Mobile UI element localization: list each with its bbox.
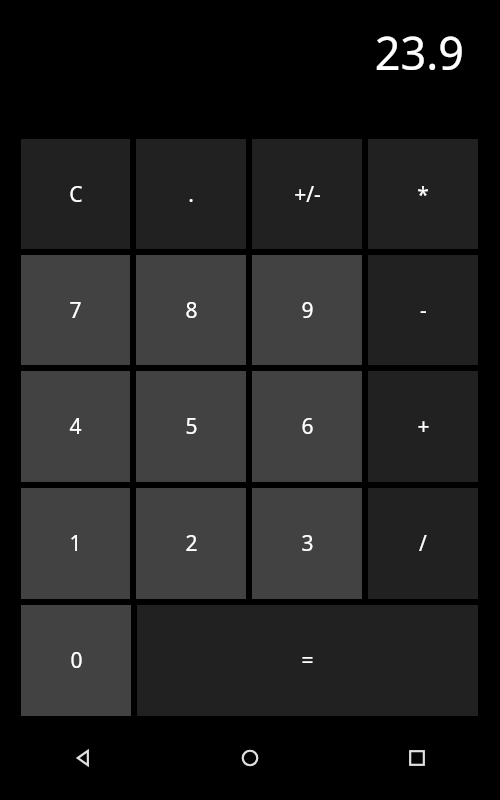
button[interactable]: 3 [252, 488, 362, 599]
staticText: = [301, 646, 314, 675]
staticText: 4 [69, 412, 82, 441]
staticText: 0 [70, 646, 83, 675]
button[interactable]: 1 [21, 488, 130, 599]
staticText: C [69, 180, 83, 209]
button[interactable]: - [368, 255, 478, 365]
staticText: +/- [294, 180, 321, 209]
button[interactable]: 9 [252, 255, 362, 365]
button[interactable]: = [137, 605, 478, 716]
staticText: 3 [301, 529, 314, 558]
button[interactable]: Home [166, 716, 333, 800]
button[interactable]: 8 [136, 255, 246, 365]
staticText: 8 [185, 296, 198, 325]
button[interactable]: 5 [136, 371, 246, 482]
button[interactable]: Recent apps [333, 716, 500, 800]
button[interactable]: +/- [252, 139, 362, 249]
staticText: / [419, 529, 427, 558]
button[interactable]: 2 [136, 488, 246, 599]
button[interactable]: 7 [21, 255, 130, 365]
staticText: 7 [69, 296, 82, 325]
button[interactable]: . [136, 139, 246, 249]
button[interactable]: Back [0, 716, 166, 800]
button[interactable]: 6 [252, 371, 362, 482]
staticText: 1 [69, 529, 82, 558]
staticText: - [420, 296, 427, 325]
staticText: 9 [301, 296, 314, 325]
staticText: . [188, 180, 194, 209]
staticText: 5 [185, 412, 198, 441]
button[interactable]: * [368, 139, 478, 249]
button[interactable]: + [368, 371, 478, 482]
staticText: 2 [185, 529, 198, 558]
staticText: * [417, 180, 429, 209]
staticText: 6 [301, 412, 314, 441]
button[interactable]: / [368, 488, 478, 599]
button[interactable]: 0 [21, 605, 131, 716]
staticText: 23.9 [374, 22, 464, 83]
staticText: + [417, 412, 430, 441]
button[interactable]: C [21, 139, 130, 249]
button[interactable]: 4 [21, 371, 130, 482]
